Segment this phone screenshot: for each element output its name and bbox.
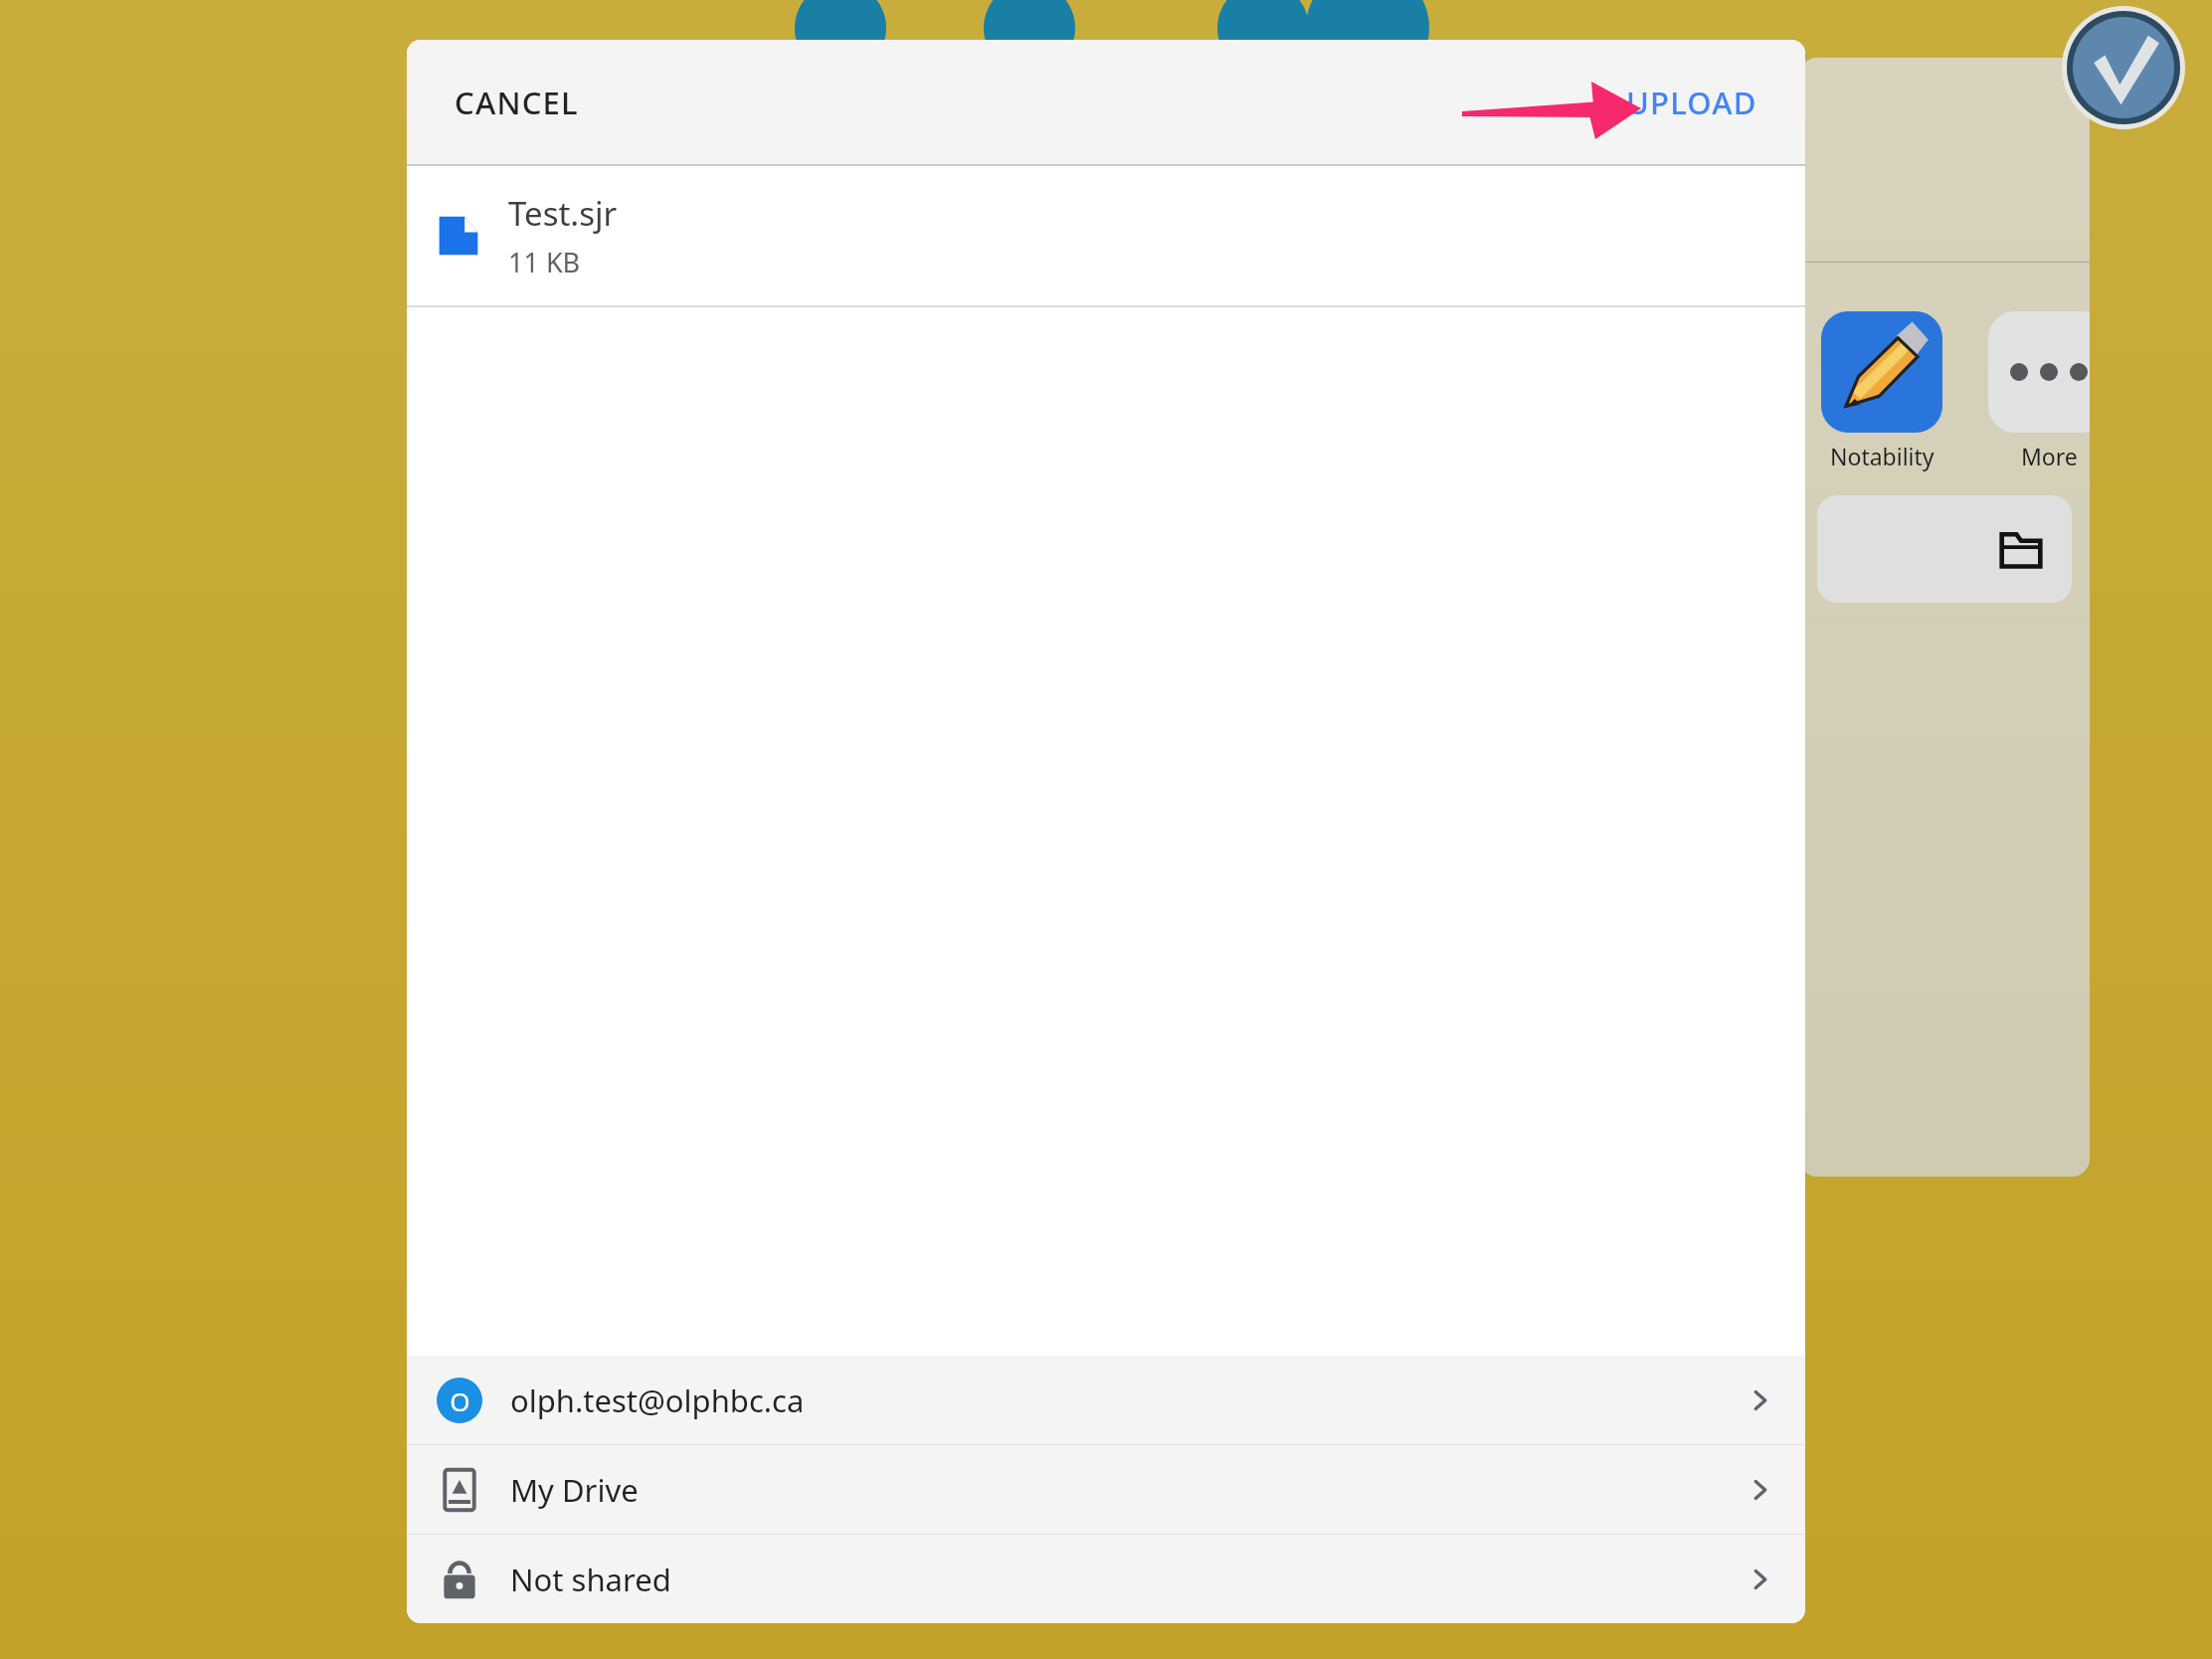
button[interactable]: Verified [2062,6,2185,129]
staticText: My Drive [510,1469,639,1511]
staticText: More [2021,441,2078,471]
staticText: O [450,1383,470,1418]
staticText: UPLOAD [1626,82,1757,123]
button[interactable]: CANCEL [423,64,611,141]
staticText: Test.sjr [508,191,618,236]
button[interactable]: UPLOAD [1594,64,1789,141]
button[interactable]: Test.sjr [407,166,1805,305]
staticText: Notability [1830,441,1935,471]
button[interactable]: O [407,1356,1805,1444]
staticText: Not shared [510,1559,671,1600]
button[interactable]: Not shared [407,1535,1805,1623]
staticText: CANCEL [455,82,579,123]
button[interactable]: More [1988,311,2090,433]
staticText: 11 KB [508,244,581,280]
button[interactable]: Files folder [1817,495,2072,603]
button[interactable]: Notability [1821,311,1942,433]
staticText: olph.test@olphbc.ca [510,1380,805,1421]
button[interactable]: My Drive [407,1445,1805,1534]
